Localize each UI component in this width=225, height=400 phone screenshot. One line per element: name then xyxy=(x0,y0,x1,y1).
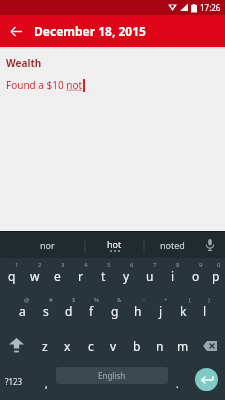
staticText: o xyxy=(192,268,200,284)
staticText: t xyxy=(101,268,106,284)
button[interactable]: December 18, 2015 xyxy=(0,15,225,47)
staticText: + xyxy=(164,296,168,304)
staticText: 6 xyxy=(130,261,134,269)
button[interactable]: m xyxy=(171,328,194,363)
staticText: z xyxy=(42,338,48,354)
button[interactable]: t xyxy=(92,258,115,293)
staticText: 2 xyxy=(38,261,42,269)
staticText: hot xyxy=(107,238,122,250)
button[interactable]: ?123 xyxy=(0,363,27,400)
staticText: noted xyxy=(160,239,185,251)
button[interactable]: c xyxy=(79,328,102,363)
staticText: n xyxy=(156,338,164,354)
button[interactable]: k xyxy=(172,293,195,328)
button[interactable]: v xyxy=(102,328,125,363)
staticText: 0 xyxy=(217,261,221,269)
staticText: ?123 xyxy=(5,376,23,387)
staticText: - xyxy=(143,296,145,304)
staticText: . xyxy=(176,377,179,391)
staticText: 7 xyxy=(153,261,157,269)
staticText: English xyxy=(98,370,126,381)
staticText: d xyxy=(65,303,73,319)
button[interactable]: p xyxy=(207,258,225,293)
staticText: 1 xyxy=(15,261,19,269)
staticText: 5 xyxy=(107,261,111,269)
staticText: $ xyxy=(72,296,76,304)
button[interactable] xyxy=(0,15,32,47)
button[interactable]: r xyxy=(69,258,92,293)
staticText: a xyxy=(19,303,26,319)
staticText: Found a $10 not xyxy=(6,78,83,92)
button[interactable]: l xyxy=(195,293,214,328)
staticText: 4 xyxy=(84,261,88,269)
staticText: @ xyxy=(24,296,30,304)
staticText: k xyxy=(180,303,187,319)
staticText: r xyxy=(78,268,83,284)
button[interactable]: z xyxy=(33,328,56,363)
button[interactable]: . xyxy=(168,363,186,400)
button[interactable] xyxy=(0,328,33,363)
button[interactable]: j xyxy=(149,293,172,328)
staticText: m xyxy=(177,338,189,354)
staticText: q xyxy=(8,268,16,284)
staticText: s xyxy=(43,303,49,319)
button[interactable]: d xyxy=(57,293,80,328)
button[interactable]: h xyxy=(126,293,149,328)
staticText: % xyxy=(94,296,99,304)
staticText: e xyxy=(54,268,61,284)
button[interactable] xyxy=(194,328,225,363)
staticText: i xyxy=(171,268,175,284)
button[interactable]: x xyxy=(56,328,79,363)
staticText: ( xyxy=(189,296,191,304)
staticText: ) xyxy=(208,296,210,304)
staticText: u xyxy=(146,268,154,284)
button[interactable]: g xyxy=(103,293,126,328)
button[interactable]: nor xyxy=(10,232,85,258)
staticText: v xyxy=(110,338,117,354)
staticText: j xyxy=(159,303,163,319)
button[interactable]: English xyxy=(56,367,168,384)
button[interactable]: e xyxy=(46,258,69,293)
button[interactable]: u xyxy=(138,258,161,293)
staticText: December 18, 2015 xyxy=(34,23,146,39)
staticText: 9 xyxy=(199,261,203,269)
button[interactable]: q xyxy=(0,258,23,293)
staticText: 8 xyxy=(176,261,180,269)
staticText: 17:26 xyxy=(200,2,221,13)
staticText: y xyxy=(123,268,130,284)
staticText: g xyxy=(111,303,119,319)
staticText: f xyxy=(89,303,94,319)
staticText: c xyxy=(88,338,94,354)
button[interactable]: w xyxy=(23,258,46,293)
staticText: , xyxy=(45,377,48,391)
button[interactable]: a xyxy=(11,293,34,328)
button[interactable]: n xyxy=(148,328,171,363)
staticText: & xyxy=(117,296,122,304)
button[interactable]: hot xyxy=(85,232,144,258)
staticText: nor xyxy=(40,239,55,251)
staticText: x xyxy=(64,338,71,354)
staticText: h xyxy=(134,303,142,319)
button[interactable]: b xyxy=(125,328,148,363)
button[interactable]: , xyxy=(36,363,56,400)
staticText: Wealth xyxy=(6,56,42,70)
button[interactable]: o xyxy=(184,258,207,293)
button[interactable] xyxy=(197,232,222,258)
staticText: l xyxy=(203,303,207,319)
staticText: 3 xyxy=(61,261,65,269)
button[interactable]: i xyxy=(161,258,184,293)
button[interactable]: y xyxy=(115,258,138,293)
button[interactable]: f xyxy=(80,293,103,328)
button[interactable]: s xyxy=(34,293,57,328)
button[interactable] xyxy=(195,368,218,391)
staticText: b xyxy=(133,338,141,354)
button[interactable]: noted xyxy=(144,232,200,258)
staticText: p xyxy=(212,268,220,284)
staticText: w xyxy=(30,268,40,284)
staticText: # xyxy=(49,296,53,304)
